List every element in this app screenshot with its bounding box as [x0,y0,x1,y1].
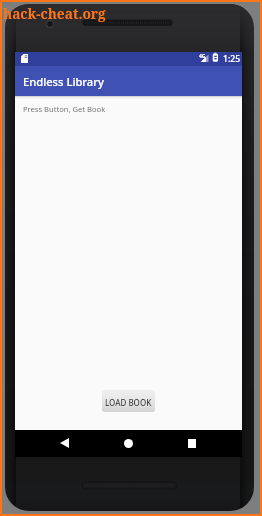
staticText: 4G [199,53,206,60]
button[interactable]: Home [115,430,141,456]
staticText: Press Button, Get Book [23,104,106,114]
button[interactable]: Recent apps [179,430,205,456]
staticText: Endless Library [23,74,104,89]
button[interactable]: LOAD BOOK [102,390,155,412]
staticText: LOAD BOOK [105,397,152,408]
button[interactable]: Back [51,430,77,456]
staticText: hack-cheat.org [3,4,106,23]
staticText: 1:25 [223,53,241,65]
